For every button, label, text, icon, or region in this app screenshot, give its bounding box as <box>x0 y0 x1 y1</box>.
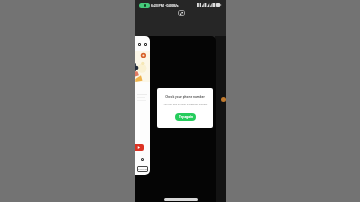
button[interactable]: SETTINGS <box>137 166 148 172</box>
button[interactable]: YouTube <box>135 144 144 151</box>
staticText: Check your phone number <box>165 95 205 99</box>
staticText: 6:23 PM · 0.00B/s <box>151 3 179 8</box>
button[interactable]: Screen recorder controls <box>178 10 185 16</box>
button[interactable]: Photos <box>144 43 147 46</box>
staticText: You can also try with a different number <box>163 102 208 105</box>
staticText: Try again <box>179 115 193 119</box>
button[interactable]: Try again <box>175 113 196 121</box>
button[interactable]: Account <box>141 158 144 161</box>
button[interactable]: Saved <box>138 43 141 46</box>
staticText: SETTINGS <box>137 168 148 171</box>
